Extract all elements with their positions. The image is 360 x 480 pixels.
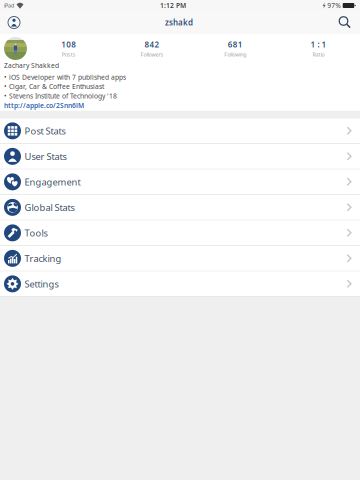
button[interactable]: 681 bbox=[193, 39, 277, 58]
staticText: zshakd bbox=[165, 17, 193, 28]
staticText: Zachary Shakked bbox=[4, 61, 59, 70]
staticText: Global Stats bbox=[24, 201, 74, 214]
button[interactable]: 1 : 1 bbox=[277, 39, 360, 58]
button[interactable]: Post Stats bbox=[0, 118, 360, 143]
button[interactable]: Tracking bbox=[0, 246, 360, 271]
staticText: • iOS Developer with 7 published apps bbox=[4, 73, 126, 82]
button[interactable]: User Stats bbox=[0, 144, 360, 169]
button[interactable]: Engagement bbox=[0, 169, 360, 194]
staticText: iPad bbox=[4, 2, 14, 9]
button[interactable]: Settings bbox=[0, 271, 360, 296]
staticText: User Stats bbox=[24, 150, 66, 163]
button[interactable]: 108 bbox=[27, 39, 110, 58]
staticText: 97% bbox=[327, 1, 341, 10]
staticText: Tracking bbox=[24, 252, 61, 265]
staticText: 681 bbox=[228, 39, 243, 50]
staticText: • Stevens Institute of Technology '18 bbox=[4, 92, 117, 100]
staticText: Following bbox=[224, 51, 246, 58]
staticText: Posts bbox=[62, 51, 76, 58]
staticText: http://apple.co/2Snn6lM bbox=[4, 101, 84, 110]
staticText: 108 bbox=[61, 39, 76, 50]
staticText: 1 : 1 bbox=[310, 39, 326, 50]
button[interactable]: 842 bbox=[110, 39, 193, 58]
button[interactable]: Search bbox=[334, 11, 356, 33]
staticText: Followers bbox=[140, 51, 163, 58]
button[interactable]: Global Stats bbox=[0, 195, 360, 220]
button[interactable]: Tools bbox=[0, 220, 360, 245]
button[interactable]: Profile photo bbox=[4, 37, 27, 60]
staticText: Ratio bbox=[312, 51, 324, 58]
staticText: • Cigar, Car & Coffee Enthusiast bbox=[4, 82, 104, 91]
staticText: 842 bbox=[144, 39, 159, 50]
staticText: Engagement bbox=[24, 176, 80, 188]
staticText: 1:12 PM bbox=[160, 1, 186, 10]
staticText: Settings bbox=[24, 278, 58, 290]
button[interactable]: Profile bbox=[4, 12, 24, 32]
staticText: Tools bbox=[24, 227, 47, 239]
staticText: Post Stats bbox=[24, 125, 65, 137]
